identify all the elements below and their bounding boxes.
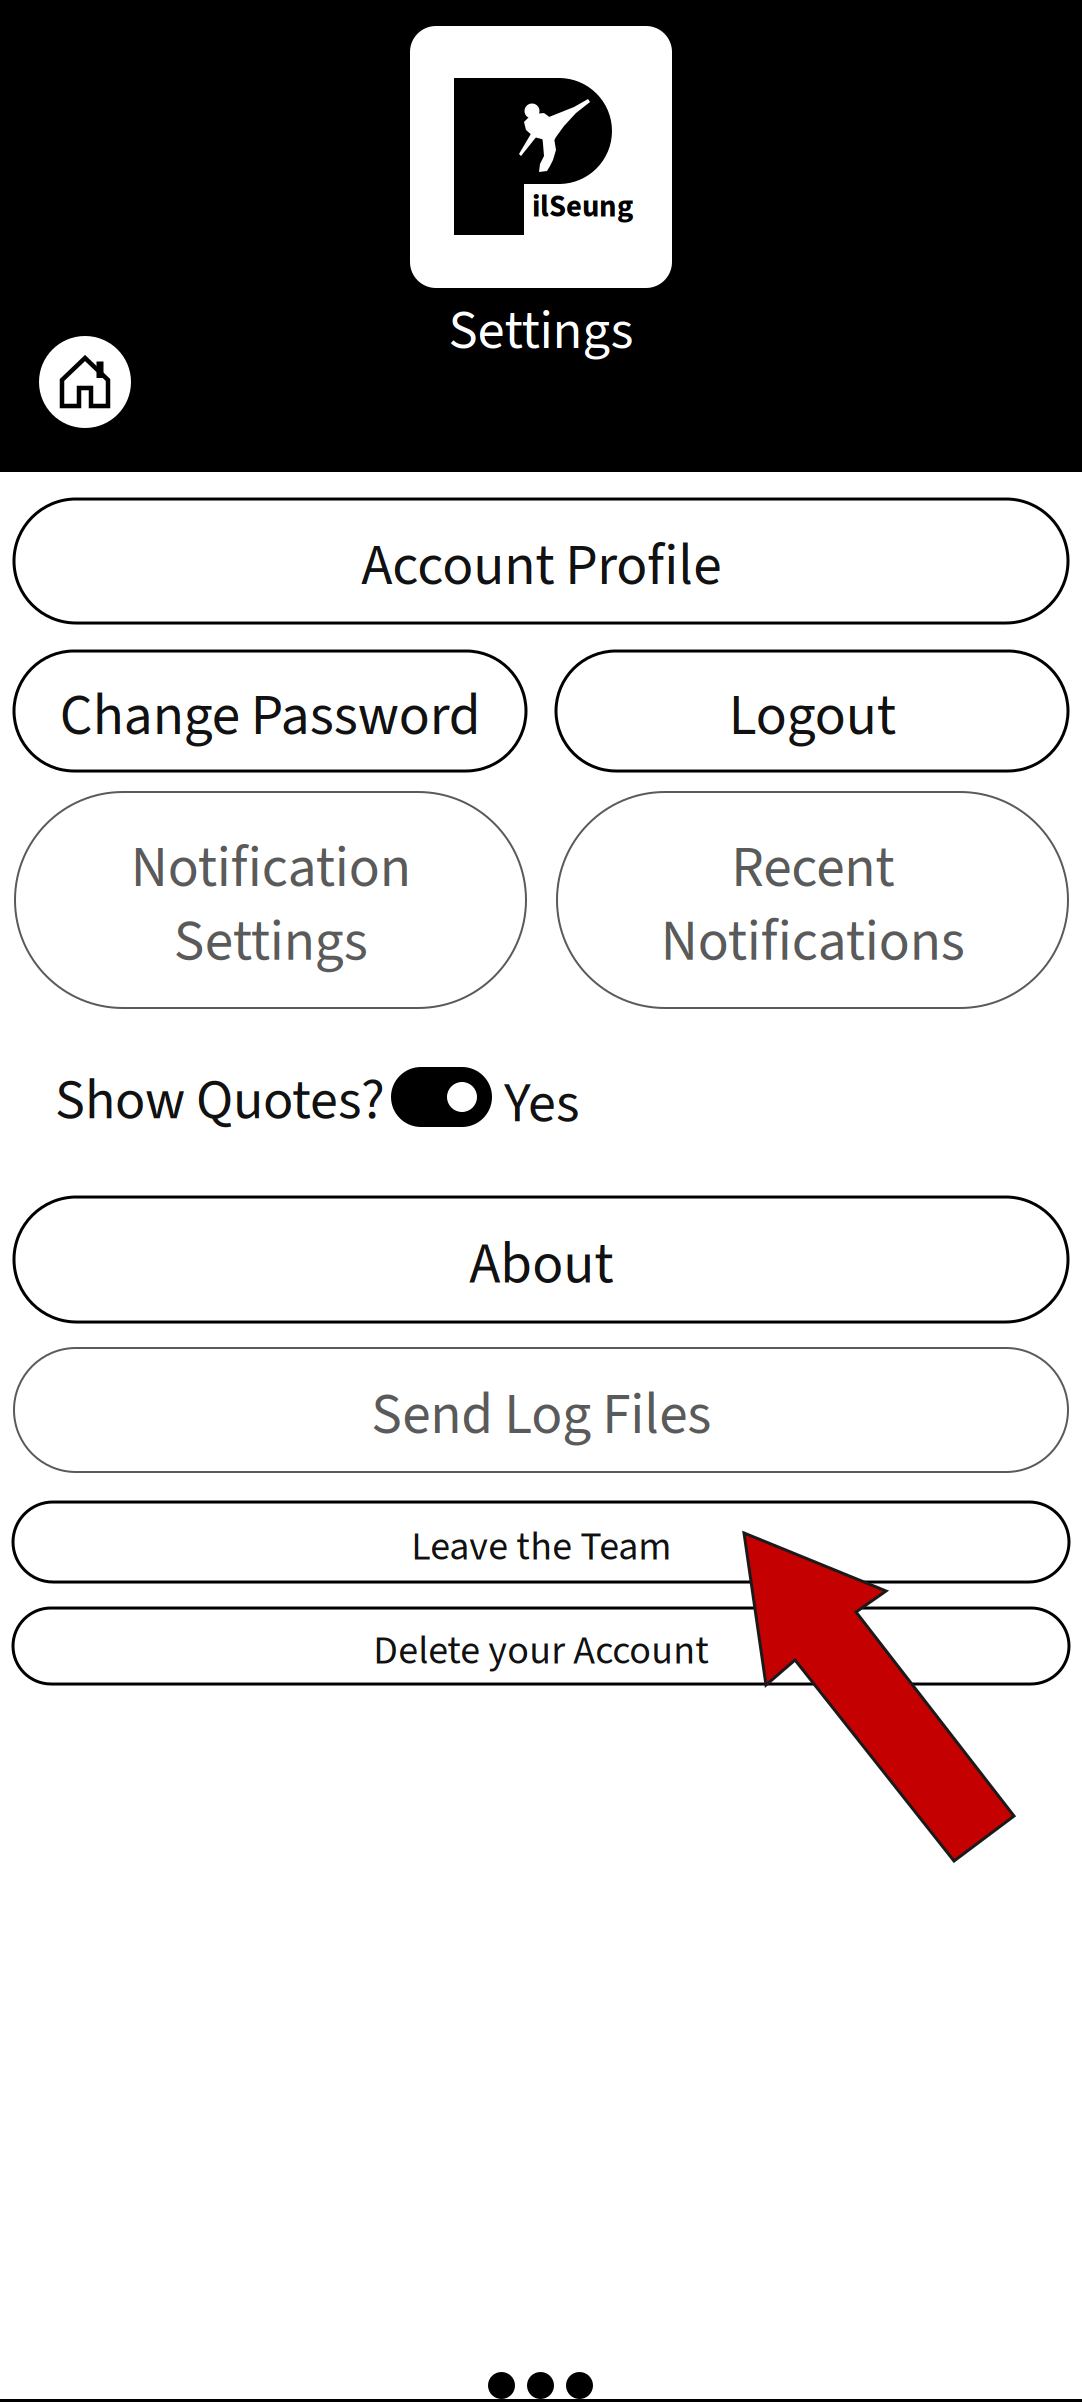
staticText: About — [469, 1224, 613, 1305]
staticText: Delete your Account — [373, 1622, 709, 1679]
staticText: Leave the Team — [411, 1518, 671, 1575]
staticText: Send Log Files — [371, 1374, 711, 1456]
staticText: Account Profile — [361, 525, 721, 607]
button[interactable]: Send Log Files — [14, 1348, 1068, 1472]
button[interactable]: Delete your Account — [13, 1608, 1069, 1684]
button[interactable]: Leave the Team — [13, 1502, 1069, 1582]
staticText: Change Password — [59, 675, 480, 757]
button[interactable]: Recent Notifications — [557, 792, 1068, 1008]
staticText: Notification Settings — [130, 827, 410, 983]
staticText: ilSeung — [532, 185, 633, 229]
staticText: Yes — [504, 1064, 579, 1144]
button[interactable]: Show Quotes? — [55, 1054, 595, 1140]
staticText: Show Quotes? — [55, 1061, 385, 1141]
staticText: Logout — [728, 675, 895, 757]
button[interactable]: Logout — [556, 651, 1068, 771]
staticText: Settings — [448, 292, 633, 370]
button[interactable]: Change Password — [14, 651, 526, 771]
button[interactable]: Notification Settings — [15, 792, 526, 1008]
button[interactable]: Home — [39, 336, 131, 428]
staticText: Recent Notifications — [660, 827, 964, 983]
button[interactable]: Account Profile — [14, 499, 1068, 623]
button[interactable]: About — [14, 1197, 1068, 1322]
